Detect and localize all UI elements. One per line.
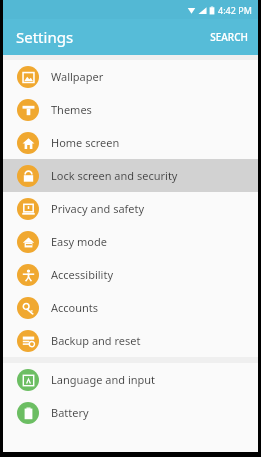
staticText: Accessibility (51, 267, 114, 282)
staticText: Wallpaper (51, 69, 104, 84)
staticText: Easy mode (51, 234, 107, 249)
staticText: Battery (51, 405, 89, 420)
button[interactable]: Accounts (3, 291, 258, 324)
staticText: Settings (16, 27, 74, 47)
staticText: Accounts (51, 300, 99, 315)
staticText: Home screen (51, 135, 120, 150)
button[interactable]: Home screen (3, 126, 258, 159)
button[interactable]: Battery (3, 396, 258, 429)
staticText: Privacy and safety (51, 201, 145, 216)
button[interactable]: Language and input (3, 363, 258, 396)
button[interactable]: Easy mode (3, 225, 258, 258)
staticText: 4:42 PM (218, 4, 252, 16)
staticText: Themes (51, 102, 92, 117)
button[interactable]: Backup and reset (3, 324, 258, 357)
button[interactable]: Wallpaper (3, 60, 258, 93)
button[interactable]: SEARCH (200, 24, 258, 50)
staticText: Lock screen and security (51, 168, 178, 183)
button[interactable]: Accessibility (3, 258, 258, 291)
staticText: Language and input (51, 372, 156, 387)
staticText: SEARCH (210, 30, 248, 44)
button[interactable]: Privacy and safety (3, 192, 258, 225)
button[interactable]: Lock screen and security (3, 159, 258, 192)
button[interactable]: Themes (3, 93, 258, 126)
staticText: Backup and reset (51, 333, 141, 348)
